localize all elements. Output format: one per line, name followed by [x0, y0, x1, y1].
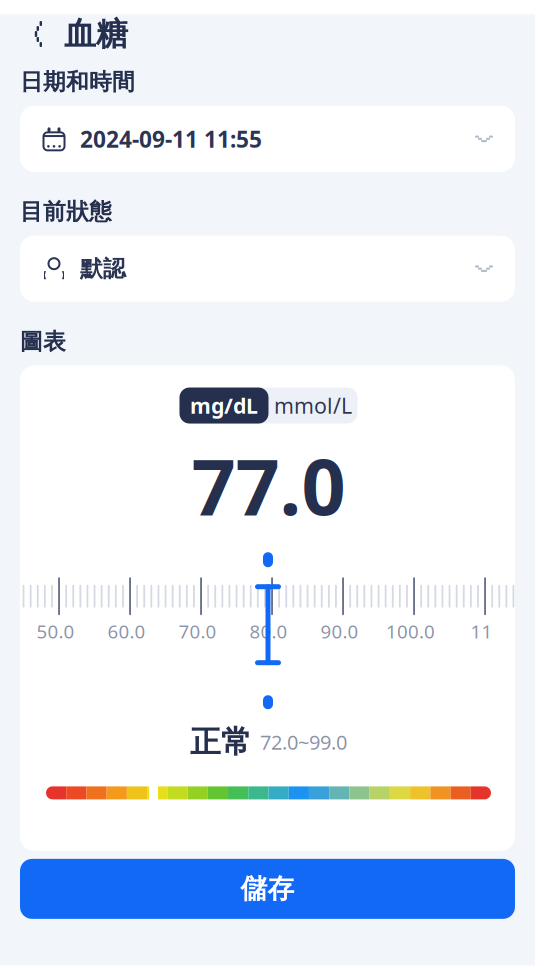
- staticText: 儲存: [240, 872, 294, 905]
- staticText: 血糖: [64, 14, 128, 54]
- button[interactable]: 默認: [20, 236, 515, 302]
- staticText: 60.0: [107, 619, 145, 644]
- staticText: 2024-09-11 11:55: [80, 124, 262, 154]
- staticText: 目前狀態: [20, 198, 112, 226]
- staticText: 70.0: [178, 619, 216, 644]
- staticText: 80.0: [249, 619, 287, 644]
- staticText: 90.0: [320, 619, 358, 644]
- staticText: 77.0: [191, 433, 345, 536]
- staticText: mmol/L: [274, 391, 352, 420]
- staticText: 100.0: [386, 619, 435, 644]
- staticText: 默認: [80, 255, 126, 283]
- staticText: mg/dL: [190, 391, 258, 420]
- staticText: 50.0: [36, 619, 74, 644]
- staticText: 11: [470, 619, 492, 644]
- button[interactable]: mmol/L: [268, 387, 357, 423]
- button[interactable]: mg/dL: [179, 387, 268, 423]
- button[interactable]: Back: [20, 14, 50, 54]
- staticText: 圖表: [20, 328, 66, 355]
- staticText: 日期和時間: [20, 68, 135, 96]
- button[interactable]: 2024-09-11 11:55: [20, 106, 515, 172]
- button[interactable]: 儲存: [20, 859, 515, 919]
- staticText: 正常: [190, 723, 252, 761]
- staticText: 72.0~99.0: [260, 729, 347, 755]
